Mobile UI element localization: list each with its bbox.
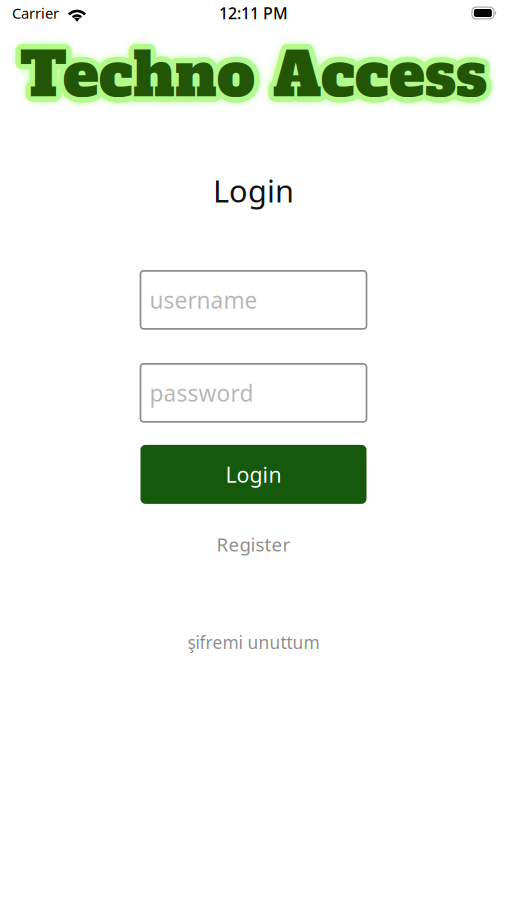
staticText: Techno Access bbox=[25, 36, 492, 118]
staticText: Techno Access bbox=[25, 34, 492, 116]
staticText: Techno Access bbox=[15, 36, 482, 118]
staticText: Login bbox=[213, 170, 294, 211]
staticText: Techno Access bbox=[22, 29, 489, 111]
staticText: Techno Access bbox=[16, 30, 483, 112]
staticText: Techno Access bbox=[20, 39, 487, 122]
staticText: Techno Access bbox=[22, 39, 489, 121]
staticText: Register bbox=[216, 532, 290, 557]
staticText: password bbox=[149, 378, 253, 408]
button[interactable]: Register bbox=[210, 526, 296, 563]
staticText: Techno Access bbox=[14, 34, 481, 116]
staticText: Techno Access bbox=[18, 39, 485, 121]
staticText: username bbox=[149, 285, 257, 315]
staticText: Carrier bbox=[12, 3, 59, 23]
button[interactable]: Login bbox=[140, 445, 366, 504]
staticText: Techno Access bbox=[20, 34, 487, 116]
staticText: Techno Access bbox=[18, 29, 485, 111]
staticText: Techno Access bbox=[16, 38, 483, 120]
button[interactable]: password bbox=[140, 364, 366, 422]
staticText: şifremi unuttum bbox=[187, 631, 319, 654]
staticText: Login bbox=[225, 460, 281, 488]
staticText: 12:11 PM bbox=[219, 2, 288, 24]
staticText: Techno Access bbox=[24, 30, 491, 112]
button[interactable]: şifremi unuttum bbox=[181, 625, 325, 660]
staticText: Techno Access bbox=[15, 32, 482, 114]
staticText: Techno Access bbox=[25, 32, 492, 114]
staticText: Techno Access bbox=[20, 34, 487, 116]
staticText: Techno Access bbox=[24, 38, 491, 120]
staticText: Techno Access bbox=[20, 28, 487, 111]
button[interactable]: username bbox=[140, 271, 366, 329]
